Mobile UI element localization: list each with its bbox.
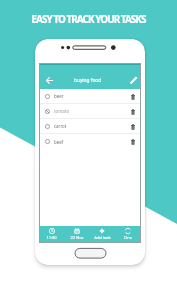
button[interactable]: Delete tomato — [128, 107, 137, 116]
staticText: 11:00 — [46, 235, 57, 240]
button[interactable]: Delete beef — [128, 137, 137, 146]
staticText: beef — [54, 139, 64, 145]
button[interactable]: Edit — [126, 73, 140, 87]
button[interactable]: Delete carrot — [128, 122, 137, 131]
button[interactable]: Back — [42, 73, 56, 87]
staticText: tomato — [54, 108, 70, 114]
staticText: buying food — [74, 77, 102, 84]
staticText: carrot — [54, 123, 67, 129]
button[interactable]: Add task — [89, 226, 115, 243]
staticText: beer — [54, 93, 64, 99]
button[interactable]: tomato — [39, 104, 141, 118]
staticText: EASY TO TRACK YOUR TASKS — [0, 12, 177, 26]
button[interactable]: beer — [39, 89, 141, 103]
staticText: 22 Nov — [70, 235, 84, 240]
button[interactable]: beef — [39, 134, 141, 149]
button[interactable]: Delete beer — [128, 92, 137, 101]
button[interactable]: One — [115, 226, 141, 243]
button[interactable]: carrot — [39, 119, 141, 133]
button[interactable]: 22 Nov — [64, 226, 89, 243]
staticText: One — [124, 235, 132, 240]
button[interactable]: 11:00 — [39, 226, 64, 243]
staticText: Add task — [94, 235, 111, 240]
